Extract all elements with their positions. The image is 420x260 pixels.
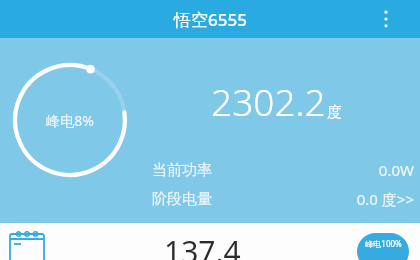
button[interactable]: 峰电100% [357, 233, 409, 260]
staticText: 0.0 度>> [356, 189, 414, 209]
staticText: 0.0W [378, 160, 414, 180]
staticText: 度 [327, 103, 342, 122]
staticText: 137.4 [164, 231, 241, 260]
staticText: 峰电8% [46, 111, 94, 130]
button[interactable]: 当前功率 [152, 160, 414, 180]
button[interactable]: 峰电8% [10, 60, 130, 180]
staticText: 悟空6555 [174, 8, 247, 31]
button[interactable]: More options [374, 7, 398, 31]
staticText: 峰电100% [365, 238, 402, 249]
button[interactable]: 阶段电量 [152, 189, 414, 209]
staticText: 2302.2 [211, 76, 326, 126]
staticText: 当前功率 [152, 161, 212, 180]
button[interactable]: 2302.2 [211, 76, 342, 126]
button[interactable]: Calendar [8, 228, 46, 260]
staticText: 阶段电量 [152, 190, 212, 209]
